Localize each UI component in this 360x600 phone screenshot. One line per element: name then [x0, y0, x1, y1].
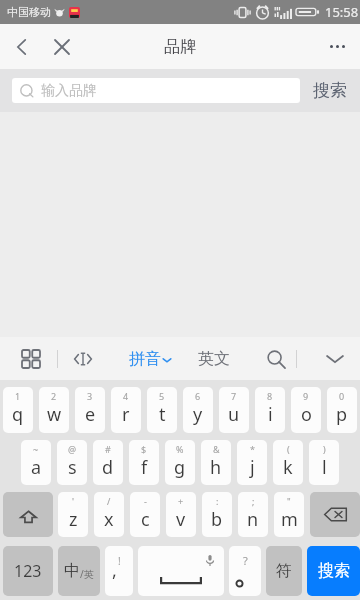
- button[interactable]: ;: [238, 492, 268, 537]
- button[interactable]: Backspace: [310, 492, 360, 537]
- button[interactable]: @: [57, 440, 87, 485]
- staticText: !: [118, 554, 121, 568]
- button[interactable]: 2: [39, 387, 69, 433]
- staticText: 123: [14, 560, 42, 582]
- staticText: m: [281, 507, 298, 532]
- button[interactable]: 6: [183, 387, 213, 433]
- staticText: p: [336, 402, 348, 427]
- button[interactable]: 英文: [196, 349, 232, 369]
- staticText: $: [141, 443, 147, 455]
- staticText: 搜索: [313, 80, 347, 101]
- staticText: d: [102, 455, 114, 480]
- button[interactable]: ~: [21, 440, 51, 485]
- button[interactable]: Keyboard layouts: [16, 344, 46, 374]
- button[interactable]: 123: [3, 546, 53, 596]
- button[interactable]: 5: [147, 387, 177, 433]
- staticText: #: [105, 443, 111, 455]
- button[interactable]: 符: [266, 546, 302, 596]
- staticText: a: [31, 455, 42, 480]
- button[interactable]: $: [129, 440, 159, 485]
- staticText: 品牌: [164, 37, 196, 57]
- staticText: &: [213, 443, 220, 455]
- staticText: x: [104, 507, 114, 532]
- button[interactable]: 输入品牌: [12, 78, 300, 103]
- button[interactable]: Shift: [3, 492, 53, 537]
- button[interactable]: Hide keyboard: [319, 343, 351, 375]
- button[interactable]: 0: [327, 387, 357, 433]
- staticText: 中国移动: [7, 5, 51, 19]
- staticText: 中: [64, 561, 80, 581]
- staticText: v: [176, 507, 186, 532]
- staticText: t: [159, 402, 166, 427]
- button[interactable]: 9: [291, 387, 321, 433]
- button[interactable]: Move cursor: [70, 344, 96, 374]
- staticText: 9: [303, 390, 309, 402]
- staticText: y: [193, 402, 203, 427]
- staticText: 拼音: [129, 349, 161, 369]
- button[interactable]: Close: [42, 24, 82, 69]
- staticText: :: [216, 495, 219, 507]
- button[interactable]: (: [273, 440, 303, 485]
- button[interactable]: 搜索: [307, 546, 360, 596]
- button[interactable]: 8: [255, 387, 285, 433]
- staticText: ': [72, 495, 75, 507]
- staticText: h: [210, 455, 222, 480]
- staticText: z: [69, 507, 78, 532]
- button[interactable]: ': [58, 492, 88, 537]
- staticText: 5: [159, 390, 165, 402]
- button[interactable]: ": [274, 492, 304, 537]
- button[interactable]: 1: [3, 387, 33, 433]
- staticText: j: [250, 455, 255, 480]
- button[interactable]: Space: [138, 546, 224, 596]
- button[interactable]: 拼音: [127, 349, 174, 369]
- button[interactable]: *: [237, 440, 267, 485]
- button[interactable]: 3: [75, 387, 105, 433]
- button[interactable]: %: [165, 440, 195, 485]
- button[interactable]: !: [105, 546, 133, 596]
- button[interactable]: #: [93, 440, 123, 485]
- button[interactable]: -: [130, 492, 160, 537]
- staticText: *: [250, 443, 255, 455]
- button[interactable]: ?: [229, 546, 261, 596]
- staticText: 15:58: [325, 3, 359, 21]
- staticText: /: [107, 495, 111, 507]
- button[interactable]: More options: [314, 24, 360, 69]
- button[interactable]: /: [94, 492, 124, 537]
- button[interactable]: 7: [219, 387, 249, 433]
- staticText: @: [68, 443, 77, 455]
- staticText: 符: [276, 561, 292, 581]
- staticText: e: [85, 402, 96, 427]
- staticText: r: [122, 402, 130, 427]
- button[interactable]: ): [309, 440, 339, 485]
- button[interactable]: 搜索: [300, 69, 360, 112]
- staticText: g: [174, 455, 186, 480]
- button[interactable]: :: [202, 492, 232, 537]
- staticText: b: [211, 507, 223, 532]
- button[interactable]: Search: [260, 343, 292, 375]
- staticText: f: [141, 455, 148, 480]
- staticText: 输入品牌: [41, 82, 97, 100]
- staticText: o: [301, 402, 312, 427]
- button[interactable]: +: [166, 492, 196, 537]
- staticText: ): [323, 443, 326, 455]
- button[interactable]: Back: [0, 24, 42, 69]
- staticText: 4: [123, 390, 129, 402]
- staticText: +: [178, 495, 184, 507]
- button[interactable]: &: [201, 440, 231, 485]
- staticText: l: [322, 455, 327, 480]
- button[interactable]: 中: [58, 546, 100, 596]
- staticText: k: [283, 455, 293, 480]
- staticText: 英文: [198, 349, 230, 369]
- staticText: 1: [15, 390, 21, 402]
- staticText: ,: [112, 558, 117, 583]
- staticText: 搜索: [318, 561, 350, 581]
- staticText: ": [287, 495, 291, 507]
- staticText: u: [228, 402, 240, 427]
- staticText: (: [287, 443, 290, 455]
- button[interactable]: 4: [111, 387, 141, 433]
- staticText: n: [247, 507, 259, 532]
- staticText: 7: [231, 390, 237, 402]
- staticText: /英: [80, 567, 94, 581]
- staticText: i: [268, 402, 273, 427]
- staticText: 2: [51, 390, 57, 402]
